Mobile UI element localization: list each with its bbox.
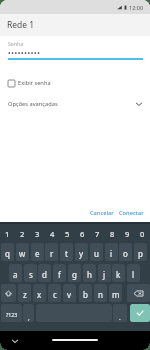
button[interactable]: g: [68, 264, 81, 282]
staticText: y: [79, 248, 84, 259]
button[interactable]: Enter: [130, 304, 150, 322]
staticText: Senha: [8, 40, 24, 47]
staticText: m: [112, 289, 120, 300]
staticText: 8: [110, 229, 115, 239]
staticText: .: [119, 313, 121, 322]
staticText: b: [83, 289, 88, 300]
button[interactable]: e: [31, 243, 44, 261]
button[interactable]: p: [134, 243, 147, 261]
staticText: 5: [65, 229, 70, 239]
staticText: r: [50, 248, 54, 259]
button[interactable]: f: [53, 264, 66, 282]
button[interactable]: h: [83, 264, 96, 282]
button[interactable]: Cancelar: [88, 207, 116, 219]
button[interactable]: k: [112, 264, 125, 282]
staticText: Rede 1: [7, 19, 35, 31]
staticText: 4: [50, 229, 55, 239]
button[interactable]: w: [16, 243, 29, 261]
staticText: j: [103, 269, 106, 280]
staticText: ,: [28, 313, 30, 322]
button[interactable]: z: [18, 284, 31, 302]
staticText: w: [19, 248, 26, 259]
staticText: f: [58, 269, 61, 280]
staticText: p: [138, 248, 143, 259]
staticText: Exibir senha: [18, 79, 51, 87]
button[interactable]: r: [45, 243, 58, 261]
button[interactable]: Hide keyboard: [9, 335, 20, 346]
staticText: 2: [20, 229, 25, 239]
staticText: Opções avançadas: [8, 100, 58, 108]
button[interactable]: ?123: [1, 304, 22, 322]
button[interactable]: 7: [90, 225, 105, 242]
staticText: 1: [5, 229, 10, 239]
staticText: e: [35, 248, 40, 259]
button[interactable]: 2: [15, 225, 30, 242]
button[interactable]: x: [33, 284, 46, 302]
button[interactable]: 4: [45, 225, 60, 242]
staticText: 9: [125, 229, 130, 239]
button[interactable]: 1: [0, 225, 15, 242]
staticText: q: [5, 248, 10, 259]
button[interactable]: u: [90, 243, 103, 261]
staticText: c: [53, 289, 57, 300]
staticText: ?123: [6, 311, 18, 318]
button[interactable]: y: [75, 243, 88, 261]
button[interactable]: s: [24, 264, 37, 282]
button[interactable]: n: [94, 284, 107, 302]
button[interactable]: q: [1, 243, 14, 261]
staticText: o: [123, 248, 128, 259]
button[interactable]: 0: [135, 225, 150, 242]
staticText: i: [110, 248, 113, 259]
staticText: l: [132, 269, 135, 280]
button[interactable]: Conectar: [117, 207, 146, 219]
button[interactable]: 9: [120, 225, 135, 242]
button[interactable]: Backspace: [127, 284, 150, 302]
staticText: v: [67, 289, 72, 300]
button[interactable]: j: [98, 264, 111, 282]
button[interactable]: a: [9, 264, 22, 282]
staticText: 6: [80, 229, 85, 239]
button[interactable]: 6: [75, 225, 90, 242]
button[interactable]: v: [63, 284, 76, 302]
staticText: 0: [140, 229, 145, 239]
staticText: 12:00: [129, 4, 144, 11]
staticText: s: [29, 269, 33, 280]
staticText: z: [23, 289, 27, 300]
button[interactable]: ,: [23, 304, 34, 322]
button[interactable]: m: [109, 284, 122, 302]
button[interactable]: t: [60, 243, 73, 261]
button[interactable]: Opções avançadas: [0, 98, 150, 110]
button[interactable]: c: [48, 284, 61, 302]
staticText: t: [65, 248, 68, 259]
staticText: 7: [95, 229, 100, 239]
button[interactable]: Exibir senha: [0, 77, 150, 89]
button[interactable]: o: [119, 243, 132, 261]
button[interactable]: 3: [30, 225, 45, 242]
staticText: u: [94, 248, 99, 259]
staticText: d: [42, 269, 47, 280]
staticText: Cancelar: [90, 209, 114, 217]
button[interactable]: 8: [105, 225, 120, 242]
button[interactable]: i: [105, 243, 118, 261]
staticText: g: [72, 269, 77, 280]
staticText: n: [98, 289, 103, 300]
button[interactable]: 5: [60, 225, 75, 242]
staticText: 3: [35, 229, 40, 239]
staticText: x: [37, 289, 42, 300]
button[interactable]: l: [127, 264, 140, 282]
staticText: Conectar: [119, 209, 144, 217]
button[interactable]: b: [79, 284, 92, 302]
button[interactable]: .: [113, 304, 127, 322]
button[interactable]: d: [38, 264, 51, 282]
staticText: k: [116, 269, 121, 280]
button[interactable]: Shift: [1, 284, 16, 302]
staticText: a: [13, 269, 18, 280]
staticText: h: [87, 269, 92, 280]
